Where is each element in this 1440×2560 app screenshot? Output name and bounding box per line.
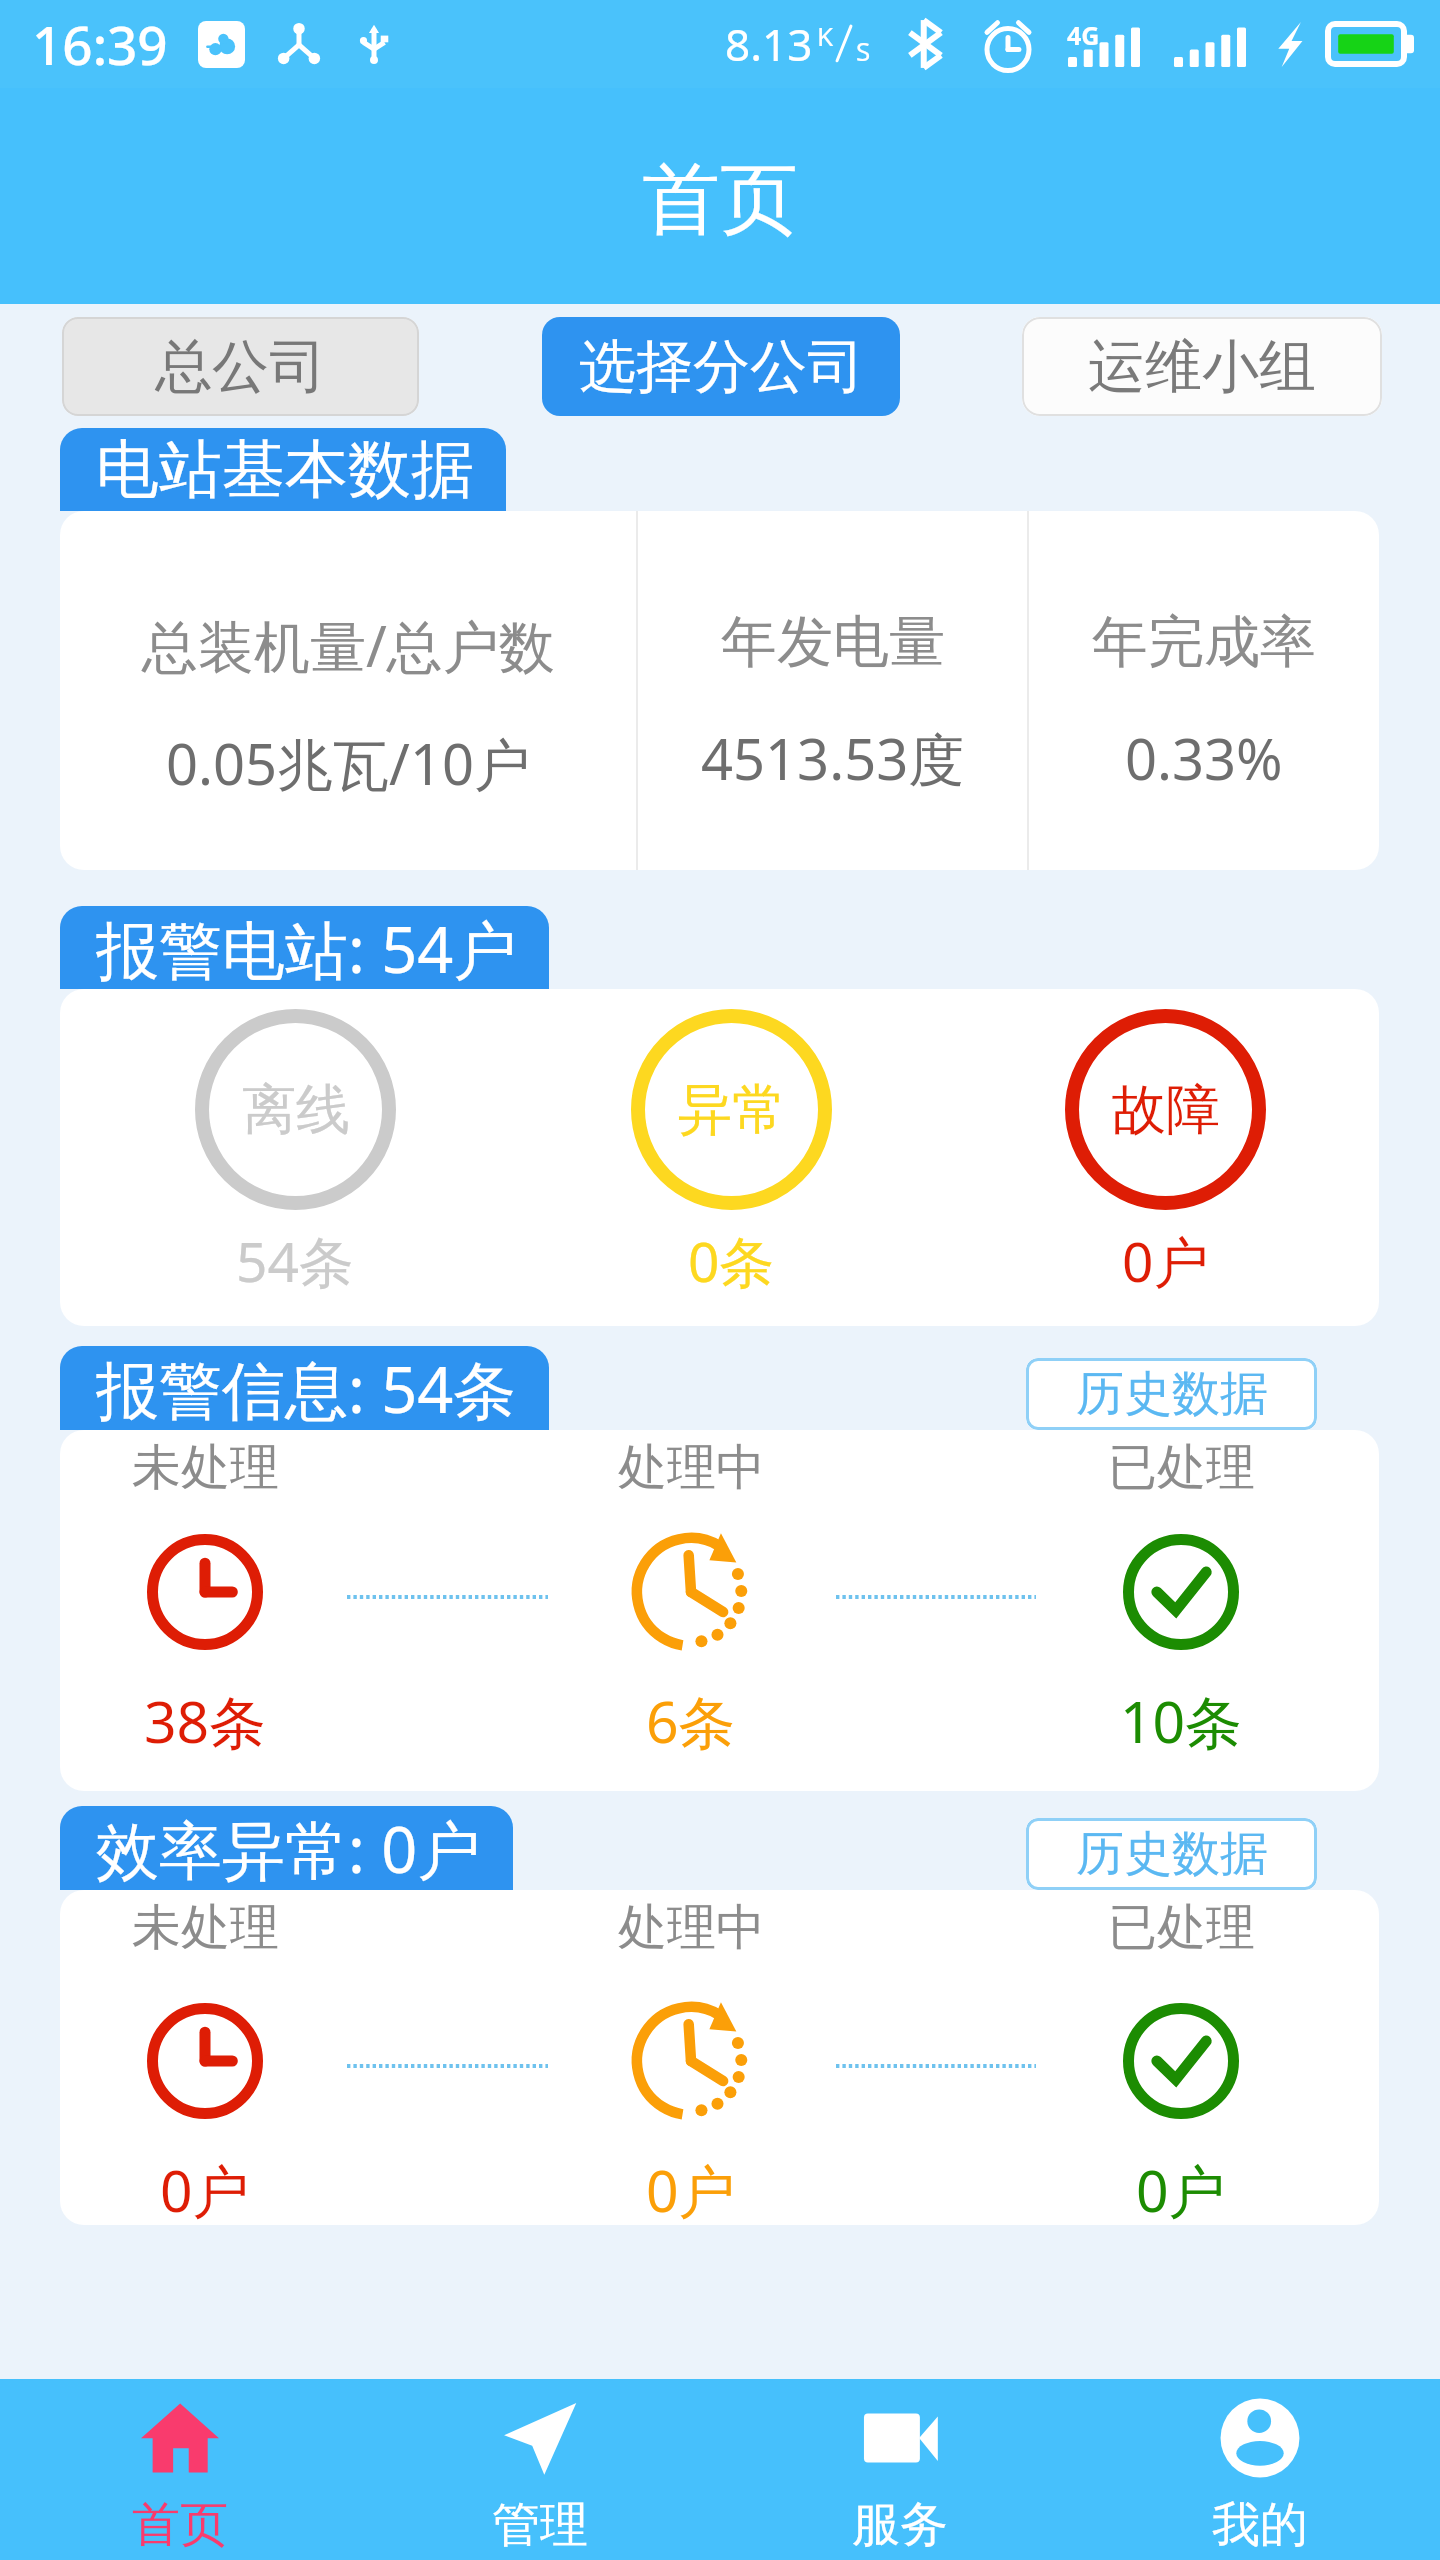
staticText: 电站基本数据 [96,430,474,509]
button[interactable]: 离线 [145,989,445,1298]
staticText: 10条 [1120,1682,1243,1760]
button[interactable]: 处理中 [551,1890,831,2225]
button[interactable]: 历史数据 [1026,1818,1317,1890]
staticText: 报警电站: 54户 [96,906,517,989]
staticText: 历史数据 [1076,1824,1268,1884]
staticText: 16:39 [32,8,168,80]
staticText: 0条 [688,1223,775,1298]
staticText: 4513.53度 [701,720,965,796]
button[interactable]: 运维小组 [1022,317,1382,416]
button[interactable]: 已处理 [1041,1890,1321,2225]
staticText: 异常 [678,1076,786,1144]
staticText: 选择分公司 [579,331,864,403]
staticText: 0.33% [1125,720,1283,796]
staticText: 离线 [242,1076,350,1144]
staticText: 0户 [1122,1223,1209,1298]
button[interactable]: 处理中 [551,1430,831,1760]
staticText: 效率异常: 0户 [96,1806,481,1890]
button[interactable]: Manage [360,2379,720,2560]
staticText: 4G [1067,18,1100,52]
staticText: 0户 [160,2151,250,2225]
staticText: 年发电量 [721,607,945,678]
staticText: 0.05兆瓦/10户 [166,725,530,801]
staticText: 54条 [236,1223,354,1298]
staticText: 总装机量/总户数 [142,607,555,683]
staticText: 处理中 [618,1897,765,1959]
staticText: 8.13 [725,14,813,74]
button[interactable]: 历史数据 [1026,1358,1317,1430]
staticText: 总公司 [155,331,326,403]
staticText: 首页 [642,151,798,249]
staticText: 历史数据 [1076,1364,1268,1424]
staticText: 已处理 [1108,1437,1255,1499]
staticText: K [817,18,834,53]
staticText: 首页 [132,2495,228,2555]
staticText: 未处理 [132,1437,279,1499]
button[interactable]: Home [0,2379,360,2560]
staticText: 已处理 [1108,1897,1255,1959]
staticText: 故障 [1112,1076,1220,1144]
staticText: 0户 [1136,2151,1226,2225]
button[interactable]: Service [720,2379,1080,2560]
staticText: 处理中 [618,1437,765,1499]
staticText: 服务 [852,2495,948,2555]
staticText: 未处理 [132,1897,279,1959]
staticText: 年完成率 [1092,607,1316,678]
button[interactable]: 已处理 [1041,1430,1321,1760]
button[interactable]: 总公司 [62,317,419,416]
staticText: 6条 [646,1682,736,1760]
staticText: 0户 [646,2151,736,2225]
staticText: S [856,33,871,68]
staticText: 运维小组 [1088,331,1316,403]
staticText: 报警信息: 54条 [96,1346,517,1430]
button[interactable]: 未处理 [65,1890,345,2225]
staticText: 管理 [492,2495,588,2555]
staticText: 38条 [144,1682,267,1760]
staticText: 我的 [1212,2495,1308,2555]
button[interactable]: 选择分公司 [542,317,900,416]
button[interactable]: 故障 [1015,989,1315,1298]
button[interactable]: 异常 [581,989,881,1298]
button[interactable]: 未处理 [65,1430,345,1760]
button[interactable]: Profile [1080,2379,1440,2560]
